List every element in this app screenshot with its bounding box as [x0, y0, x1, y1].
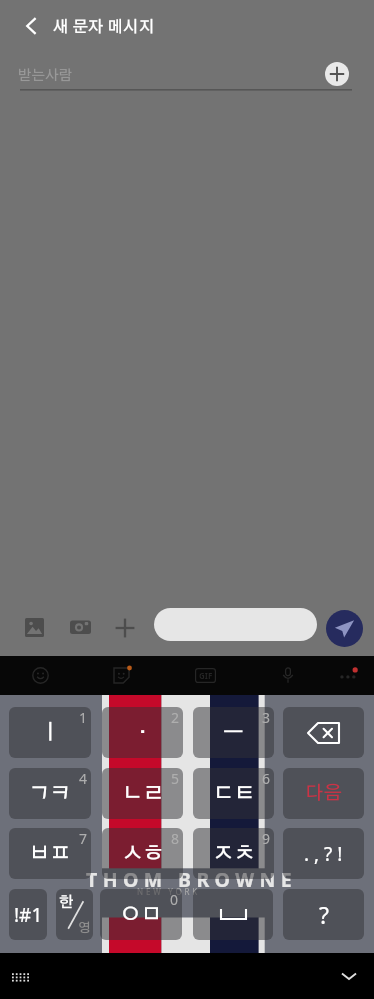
button[interactable]: ㅈㅊ: [193, 828, 274, 879]
staticText: 새 문자 메시지: [53, 19, 155, 35]
button[interactable]: ㅇㅁ: [100, 889, 182, 940]
button[interactable]: Camera: [70, 619, 91, 634]
staticText: ㅇㅁ: [120, 904, 162, 925]
staticText: ㅅㅎ: [122, 843, 164, 864]
staticText: 4: [79, 769, 88, 788]
button[interactable]: Emoji: [32, 667, 49, 684]
button[interactable]: ?: [283, 889, 364, 940]
button[interactable]: Voice input: [280, 667, 296, 683]
staticText: 다음: [305, 784, 342, 803]
button[interactable]: Stickers: [113, 667, 130, 684]
button[interactable]: !#1: [9, 889, 47, 940]
staticText: 0: [170, 890, 179, 909]
staticText: ㅡ: [223, 722, 244, 743]
staticText: 2: [171, 708, 180, 727]
button[interactable]: Add recipient: [325, 62, 349, 86]
staticText: 5: [171, 769, 180, 788]
staticText: 한: [59, 895, 74, 910]
staticText: ㅂㅍ: [29, 843, 71, 864]
button[interactable]: . , ? !: [283, 828, 364, 879]
button[interactable]: Back: [18, 12, 46, 40]
button[interactable]: ㄷㅌ: [193, 768, 274, 819]
staticText: ㄱㅋ: [29, 783, 71, 804]
button[interactable]: Keyboard: [12, 970, 31, 983]
button[interactable]: 새 문자 메시지: [53, 19, 155, 35]
staticText: 6: [262, 769, 271, 788]
button[interactable]: ㅅㅎ: [102, 828, 183, 879]
button[interactable]: ㄱㅋ: [9, 768, 91, 819]
staticText: 1: [79, 708, 88, 727]
staticText: GIF: [199, 670, 213, 681]
staticText: 받는사람: [18, 69, 73, 83]
staticText: . , ? !: [304, 841, 343, 867]
staticText: 3: [262, 708, 271, 727]
button[interactable]: [193, 889, 273, 940]
staticText: 8: [171, 829, 180, 848]
staticText: ㅈㅊ: [213, 843, 255, 864]
staticText: 9: [262, 829, 271, 848]
button[interactable]: ㄴㄹ: [102, 768, 183, 819]
button[interactable]: More options: [338, 667, 360, 683]
button[interactable]: GIF: [195, 668, 216, 683]
staticText: ㄷㅌ: [213, 783, 255, 804]
button[interactable]: Send: [326, 610, 363, 647]
button[interactable]: Message: [154, 608, 317, 641]
button[interactable]: ㅣ: [9, 707, 91, 758]
button[interactable]: Hide keyboard: [338, 965, 360, 987]
staticText: ㅣ: [40, 722, 61, 743]
button[interactable]: ㅂㅍ: [9, 828, 91, 879]
staticText: NEW YORK: [137, 886, 200, 897]
button[interactable]: ·: [102, 707, 183, 758]
staticText: ?: [319, 899, 329, 930]
button[interactable]: Attach: [115, 618, 135, 638]
button[interactable]: [283, 707, 364, 758]
staticText: THOM BROWNE: [86, 866, 298, 893]
staticText: ·: [139, 722, 147, 743]
staticText: 7: [79, 829, 88, 848]
button[interactable]: 다음: [283, 768, 364, 819]
staticText: 영: [78, 922, 91, 935]
staticText: ㄴㄹ: [122, 783, 164, 804]
button[interactable]: 한: [56, 889, 93, 940]
button[interactable]: Gallery: [25, 618, 44, 637]
staticText: !#1: [14, 902, 43, 928]
button[interactable]: ㅡ: [193, 707, 274, 758]
